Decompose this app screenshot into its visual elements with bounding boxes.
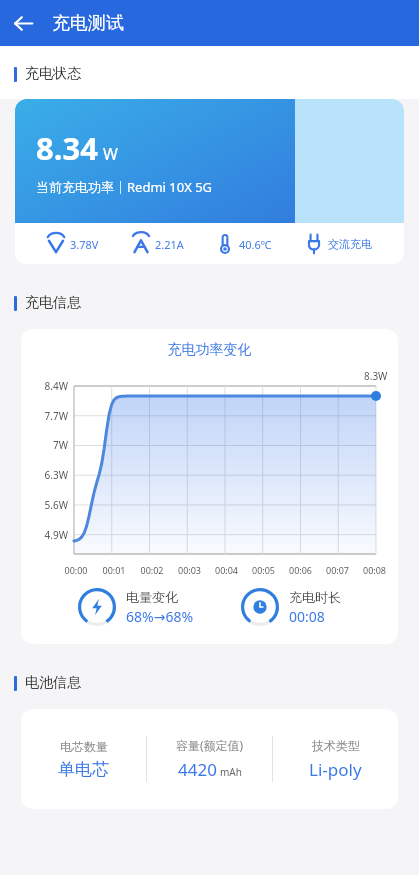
staticText: W xyxy=(103,143,118,165)
staticText: 40.6℃ xyxy=(239,237,272,252)
staticText: 3.78V xyxy=(70,237,99,252)
staticText: 00:05 xyxy=(245,564,282,576)
staticText: 充电状态 xyxy=(25,65,81,83)
staticText: 8.4W xyxy=(21,379,68,393)
button[interactable]: 8.34 xyxy=(15,99,404,264)
staticText: 技术类型 xyxy=(312,738,360,753)
staticText: 7W xyxy=(21,438,68,452)
staticText: 电量变化 xyxy=(126,589,178,605)
staticText: 00:03 xyxy=(171,564,208,576)
staticText: 电芯数量 xyxy=(60,739,108,754)
staticText: Li-poly xyxy=(309,758,362,781)
staticText: 容量(额定值) xyxy=(176,737,244,753)
staticText: 00:04 xyxy=(208,564,245,576)
button[interactable]: 充电功率变化 xyxy=(21,329,398,644)
staticText: Redmi 10X 5G xyxy=(127,178,213,196)
staticText: 00:08 xyxy=(356,564,393,576)
staticText: 7.7W xyxy=(21,409,68,423)
staticText: 当前充电功率 xyxy=(36,179,114,195)
staticText: 5.6W xyxy=(21,498,68,512)
staticText: 4.9W xyxy=(21,528,68,542)
staticText: 8.3W xyxy=(364,369,388,383)
staticText: 00:00 xyxy=(57,564,95,576)
staticText: 4420 xyxy=(178,758,217,781)
staticText: 交流充电 xyxy=(328,237,372,251)
staticText: 2.21A xyxy=(155,237,184,252)
staticText: 充电时长 xyxy=(289,589,341,605)
staticText: 68%→68% xyxy=(126,607,194,626)
staticText: mAh xyxy=(220,765,242,779)
staticText: 充电测试 xyxy=(52,12,124,35)
button[interactable]: Back xyxy=(0,0,46,46)
staticText: 6.3W xyxy=(21,468,68,482)
staticText: 00:08 xyxy=(289,607,325,626)
staticText: 00:02 xyxy=(133,564,171,576)
staticText: 电池信息 xyxy=(25,674,81,692)
staticText: 00:01 xyxy=(95,564,133,576)
staticText: 充电信息 xyxy=(25,294,81,312)
staticText: 充电功率变化 xyxy=(21,341,398,359)
staticText: 00:06 xyxy=(282,564,319,576)
staticText: 单电芯 xyxy=(58,759,109,780)
staticText: 8.34 xyxy=(36,127,98,169)
button[interactable]: 电芯数量 xyxy=(21,709,398,809)
staticText: 00:07 xyxy=(319,564,356,576)
